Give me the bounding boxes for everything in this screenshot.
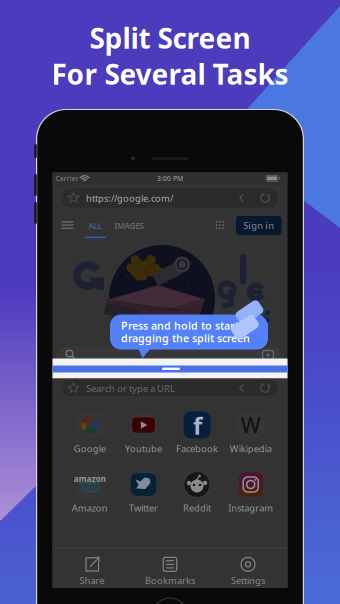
- staticText: Bookmarks: [145, 574, 195, 587]
- staticText: Instagram: [228, 502, 273, 514]
- staticText: dragging the split screen: [121, 331, 250, 345]
- staticText: Search or type a URL: [86, 382, 175, 394]
- button[interactable]: Share: [0, 0, 340, 602]
- staticText: For Several Tasks: [51, 55, 288, 93]
- staticText: W: [241, 411, 261, 439]
- staticText: Amazon: [72, 502, 108, 514]
- staticText: f: [193, 410, 202, 441]
- staticText: Google: [74, 442, 106, 455]
- staticText: Wikipedia: [230, 442, 272, 455]
- button[interactable]: Bookmarks: [0, 0, 340, 602]
- staticText: Youtube: [125, 442, 162, 455]
- staticText: 3:00 PM: [157, 174, 183, 183]
- staticText: Share: [79, 574, 104, 587]
- staticText: amazon: [74, 474, 106, 484]
- button[interactable]: https://google.com/: [0, 0, 340, 602]
- button[interactable]: IMAGES: [0, 0, 340, 602]
- staticText: Twitter: [129, 502, 158, 514]
- staticText: https://google.com/: [86, 192, 173, 204]
- staticText: Reddit: [183, 502, 211, 514]
- button[interactable]: Google apps: [0, 0, 340, 602]
- staticText: Settings: [231, 574, 265, 587]
- button[interactable]: Menu: [0, 0, 340, 602]
- staticText: ALL: [88, 220, 101, 231]
- button[interactable]: ALL: [0, 0, 340, 602]
- staticText: Facebook: [176, 442, 218, 455]
- button[interactable]: Sign in: [0, 0, 340, 602]
- staticText: Press and hold to start: [121, 318, 239, 333]
- staticText: Carrier: [56, 174, 79, 183]
- button[interactable]: Search or type a URL: [0, 0, 340, 602]
- staticText: Split Screen: [89, 19, 250, 57]
- staticText: IMAGES: [114, 220, 143, 231]
- button[interactable]: Settings: [0, 0, 340, 602]
- staticText: Sign in: [243, 219, 274, 232]
